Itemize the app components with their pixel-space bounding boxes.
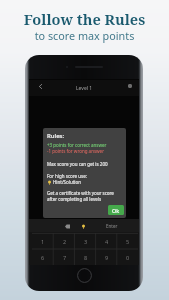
button[interactable]: Enter <box>101 219 122 232</box>
button[interactable]: 7 <box>54 249 75 265</box>
staticText: -1 points for wrong answer <box>47 148 105 154</box>
staticText: Get a certificate with your score <box>47 190 114 196</box>
staticText: Ok <box>112 207 120 214</box>
staticText: 5 <box>126 238 130 245</box>
staticText: +3 points for correct answer <box>47 142 107 148</box>
button[interactable]: Hint <box>78 221 88 231</box>
button[interactable]: 6 <box>32 249 54 265</box>
button[interactable]: 8 <box>75 249 96 265</box>
staticText: 2 <box>63 238 67 245</box>
staticText: 8 <box>84 254 88 261</box>
staticText: Hint/Solution <box>53 179 81 185</box>
staticText: Level 1 <box>76 85 93 92</box>
button[interactable]: 9 <box>96 249 117 265</box>
button[interactable]: 1 <box>32 233 54 249</box>
button[interactable]: 0 <box>117 249 138 265</box>
staticText: Enter <box>106 223 118 229</box>
staticText: 0 <box>126 254 130 261</box>
staticText: 9 <box>105 254 109 261</box>
staticText: after completing all levels <box>47 196 102 202</box>
button[interactable]: Backspace <box>62 221 72 231</box>
staticText: Rules: <box>47 132 65 140</box>
button[interactable]: 3 <box>75 233 96 249</box>
button[interactable]: Ok <box>108 205 124 215</box>
staticText: Max score you can get is 200 <box>47 161 108 167</box>
button[interactable]: Settings <box>124 80 136 92</box>
staticText: 6 <box>41 254 45 261</box>
staticText: 3 <box>84 238 88 245</box>
button[interactable]: Home <box>76 267 92 283</box>
staticText: to score max points <box>0 28 169 43</box>
button[interactable]: 5 <box>117 233 138 249</box>
button[interactable]: Back <box>34 80 46 92</box>
staticText: 7 <box>63 254 67 261</box>
button[interactable]: 4 <box>96 233 117 249</box>
staticText: 1 <box>41 238 45 245</box>
staticText: For high score use: <box>47 173 87 179</box>
staticText: 4 <box>105 238 109 245</box>
button[interactable]: 2 <box>54 233 75 249</box>
staticText: Follow the Rules <box>0 9 169 29</box>
